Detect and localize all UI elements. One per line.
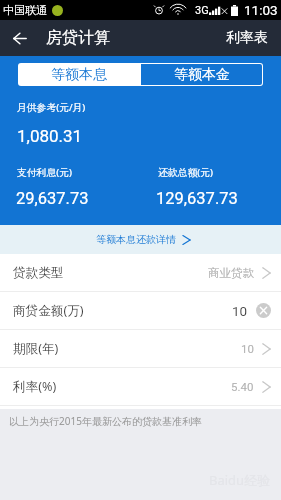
staticText: 贷款类型 xyxy=(13,265,64,281)
staticText: 商业贷款 xyxy=(208,266,254,280)
button[interactable]: 等额本息 xyxy=(18,63,140,86)
button[interactable]: 利率(%) xyxy=(0,368,281,405)
staticText: 10 xyxy=(241,342,254,355)
staticText: 房贷计算 xyxy=(46,28,110,48)
button[interactable]: 利率表 xyxy=(212,20,281,56)
staticText: 还款总额(元) xyxy=(158,166,213,179)
staticText: 11:03 xyxy=(244,2,278,18)
button[interactable]: 商贷金额(万) xyxy=(0,292,281,329)
staticText: 利率表 xyxy=(226,29,268,47)
staticText: 商贷金额(万) xyxy=(13,302,84,319)
button[interactable]: 等额本金 xyxy=(140,63,263,86)
staticText: 支付利息(元) xyxy=(17,166,72,179)
staticText: 以上为央行2015年最新公布的贷款基准利率 xyxy=(9,414,202,428)
staticText: 5.40 xyxy=(231,380,254,393)
staticText: 月供参考(元/月) xyxy=(17,101,86,114)
staticText: 3G xyxy=(195,4,209,17)
staticText: 29,637.73 xyxy=(16,189,89,208)
staticText: 等额本金 xyxy=(174,66,230,84)
staticText: 期限(年) xyxy=(13,340,59,357)
staticText: 等额本息还款详情 xyxy=(96,233,176,246)
staticText: 129,637.73 xyxy=(156,189,238,208)
button[interactable]: 贷款类型 xyxy=(0,254,281,291)
button[interactable]: Back xyxy=(0,20,39,56)
button[interactable]: 期限(年) xyxy=(0,330,281,367)
button[interactable]: 等额本息还款详情 xyxy=(0,225,281,254)
staticText: 1,080.31 xyxy=(17,126,83,146)
staticText: 10 xyxy=(232,303,248,319)
staticText: 中国联通 xyxy=(3,3,47,17)
staticText: 利率(%) xyxy=(13,378,57,395)
staticText: 等额本息 xyxy=(51,66,107,84)
